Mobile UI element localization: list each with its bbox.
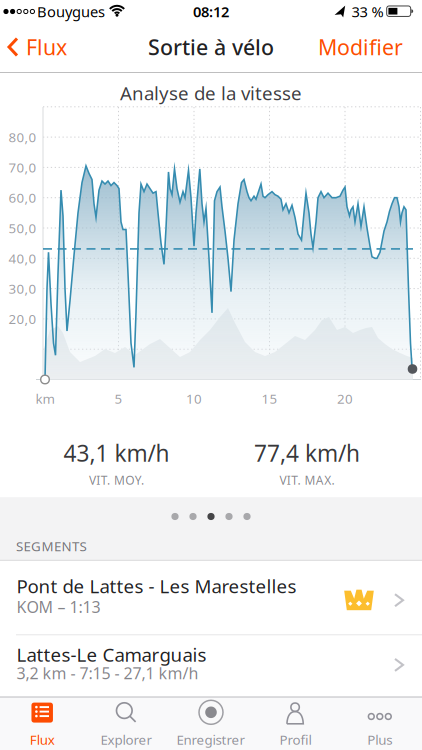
staticText: 77,4 km/h xyxy=(254,438,360,468)
staticText: 50,0 xyxy=(8,219,36,237)
staticText: 20 xyxy=(337,390,353,407)
staticText: Profil xyxy=(279,731,311,748)
staticText: 70,0 xyxy=(8,158,36,176)
staticText: Enregistrer xyxy=(176,731,245,748)
staticText: 30,0 xyxy=(8,280,36,297)
button[interactable]: Plus xyxy=(338,697,422,750)
staticText: 3,2 km - 7:15 - 27,1 km/h xyxy=(16,662,198,684)
staticText: 60,0 xyxy=(8,189,36,206)
button[interactable]: Profil xyxy=(253,697,338,750)
staticText: 80,0 xyxy=(8,128,36,146)
staticText: 08:12 xyxy=(193,2,229,21)
staticText: Explorer xyxy=(101,731,153,748)
button[interactable]: Lattes-Le Camarguais xyxy=(0,635,422,697)
staticText: 15 xyxy=(261,390,277,407)
staticText: Plus xyxy=(367,731,392,748)
button[interactable]: Enregistrer xyxy=(169,697,253,750)
staticText: Sortie à vélo xyxy=(148,33,274,61)
staticText: VIT. MOY. xyxy=(89,472,144,488)
button[interactable]: Flux xyxy=(0,697,84,750)
staticText: Analyse de la vitesse xyxy=(120,81,302,105)
staticText: 5 xyxy=(114,390,122,407)
staticText: 40,0 xyxy=(8,249,36,267)
button[interactable]: Explorer xyxy=(84,697,169,750)
staticText: Bouygues xyxy=(37,2,105,21)
staticText: 10 xyxy=(186,390,202,407)
staticText: 43,1 km/h xyxy=(63,438,169,468)
staticText: Flux xyxy=(26,33,67,61)
staticText: 20,0 xyxy=(8,310,36,328)
button[interactable]: Modifier xyxy=(318,33,403,61)
staticText: km xyxy=(35,390,54,407)
staticText: Lattes-Le Camarguais xyxy=(16,642,206,667)
button[interactable]: Flux xyxy=(7,33,67,61)
staticText: VIT. MAX. xyxy=(279,472,335,488)
staticText: 33 % xyxy=(351,2,383,21)
staticText: Pont de Lattes - Les Marestelles xyxy=(16,573,296,598)
staticText: Flux xyxy=(30,731,55,748)
button[interactable]: Pont de Lattes - Les Marestelles xyxy=(0,561,422,635)
staticText: SEGMENTS xyxy=(16,537,86,555)
staticText: KOM – 1:13 xyxy=(16,596,100,617)
staticText: Modifier xyxy=(318,33,403,61)
